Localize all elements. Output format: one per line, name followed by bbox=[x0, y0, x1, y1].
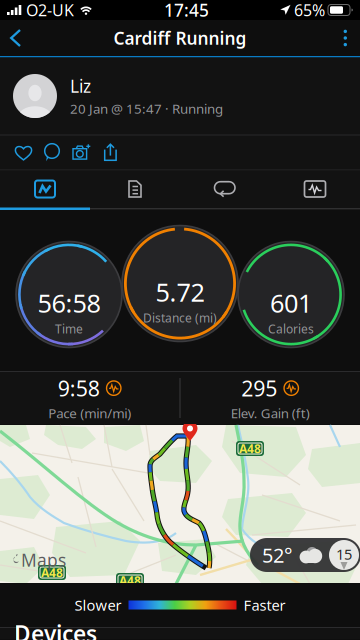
staticText: Calories bbox=[268, 321, 314, 337]
staticText: A48 bbox=[41, 564, 63, 580]
staticText: 15 bbox=[336, 544, 352, 564]
button[interactable]: Add photo bbox=[67, 135, 96, 169]
staticText: Time bbox=[55, 321, 83, 337]
staticText: Cardiff Running bbox=[113, 26, 246, 49]
staticText: A48 bbox=[239, 440, 261, 456]
staticText: Distance (mi) bbox=[143, 310, 217, 326]
staticText: 56:58 bbox=[37, 286, 100, 320]
staticText: A48 bbox=[119, 572, 141, 588]
staticText: O2-UK bbox=[26, 0, 74, 21]
staticText: 601 bbox=[270, 286, 312, 320]
button[interactable]: Comment bbox=[38, 135, 67, 169]
staticText: Maps bbox=[21, 548, 66, 571]
staticText: Elev. Gain (ft) bbox=[231, 404, 310, 422]
staticText: 65% bbox=[294, 0, 325, 21]
button[interactable]: Share bbox=[96, 135, 125, 169]
button[interactable]: Laps bbox=[180, 170, 270, 207]
staticText: Liz bbox=[70, 75, 91, 98]
staticText: 20 Jan @ 15:47 · Running bbox=[70, 100, 223, 117]
staticText: 17:45 bbox=[164, 0, 209, 21]
button[interactable]: Like bbox=[9, 135, 38, 169]
staticText: Slower bbox=[74, 595, 121, 615]
button[interactable]: Graphs bbox=[270, 170, 360, 207]
staticText: Pace (min/mi) bbox=[48, 404, 131, 422]
button[interactable]: Splits bbox=[90, 170, 180, 207]
staticText: 9:58 bbox=[58, 374, 100, 402]
button[interactable]: More options bbox=[330, 20, 360, 56]
staticText: 5.72 bbox=[155, 275, 204, 309]
staticText: Faster bbox=[243, 595, 285, 615]
staticText: Devices bbox=[14, 618, 97, 640]
staticText: 295 bbox=[241, 374, 277, 402]
staticText: 52° bbox=[262, 542, 293, 568]
button[interactable]: Map bbox=[0, 170, 90, 207]
button[interactable]: Back bbox=[0, 20, 35, 56]
